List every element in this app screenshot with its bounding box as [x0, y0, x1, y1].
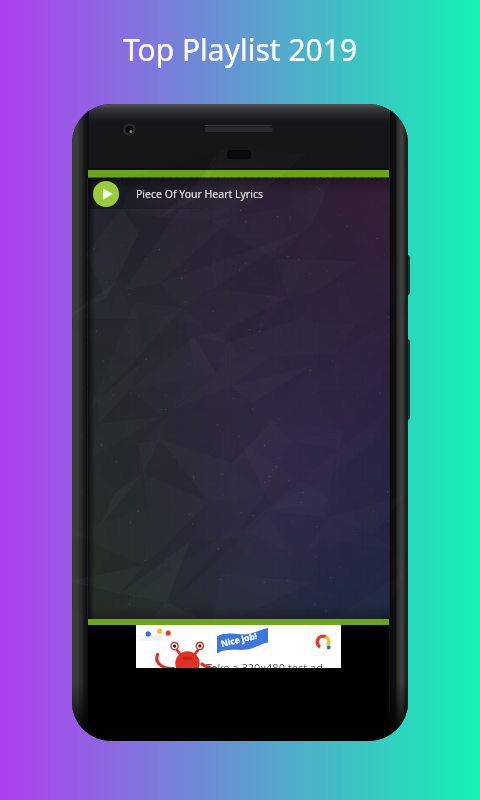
button[interactable]: Piece Of Your Heart Lyrics [88, 178, 389, 209]
staticText: Piece Of Your Heart Lyrics [136, 187, 263, 201]
other: Volume button [404, 255, 410, 295]
staticText: Nice job! [220, 630, 258, 650]
staticText: Take a 320x480 test ad [206, 660, 324, 675]
button[interactable]: Advertisement [136, 625, 341, 668]
other: Power button [404, 339, 410, 420]
staticText: Top Playlist 2019 [0, 29, 480, 70]
